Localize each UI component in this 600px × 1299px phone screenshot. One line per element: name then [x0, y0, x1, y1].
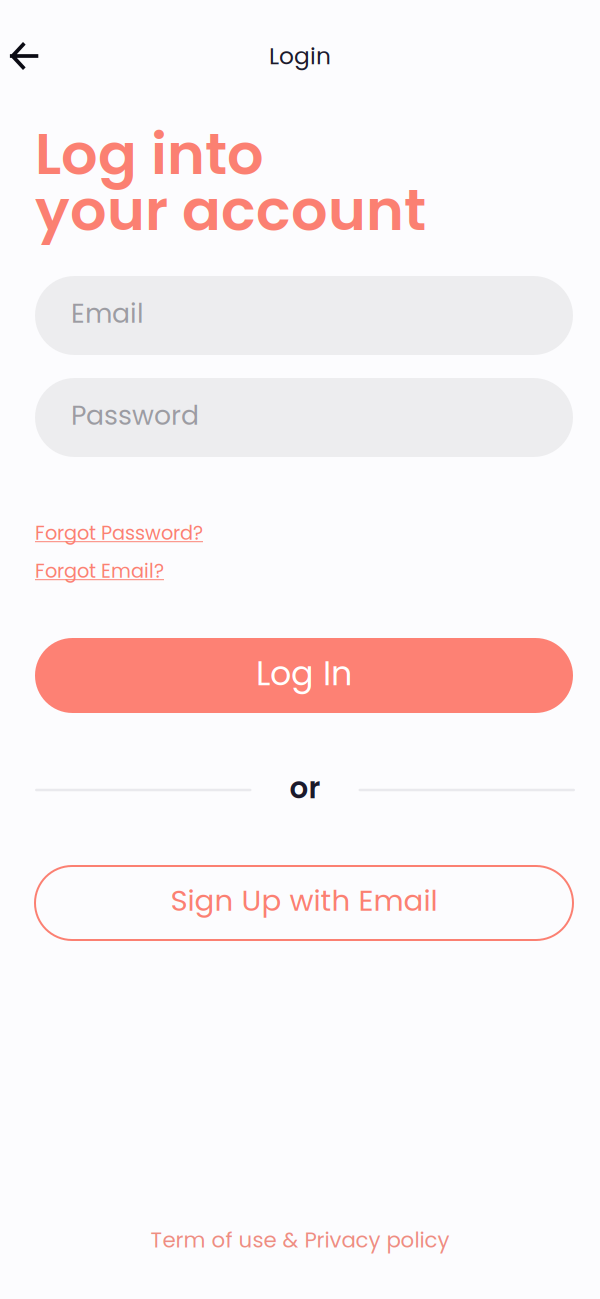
staticText: or — [289, 767, 320, 809]
button[interactable]: Term of use & Privacy policy — [150, 1225, 449, 1255]
staticText: Email — [71, 295, 144, 332]
button[interactable]: Forgot Email? — [35, 558, 164, 584]
staticText: Forgot Email? — [35, 557, 164, 585]
button[interactable]: Sign Up with Email — [35, 866, 573, 940]
staticText: Log In — [256, 650, 352, 697]
button[interactable]: Back — [0, 34, 65, 78]
staticText: Password — [71, 397, 199, 434]
button[interactable]: Log In — [35, 638, 573, 713]
staticText: Log into — [35, 114, 264, 194]
staticText: Forgot Password? — [35, 519, 203, 547]
button[interactable]: Forgot Password? — [35, 520, 203, 546]
staticText: your account — [35, 170, 426, 250]
staticText: Login — [269, 40, 331, 72]
staticText: Term of use & Privacy policy — [150, 1225, 449, 1255]
staticText: Sign Up with Email — [170, 880, 437, 921]
